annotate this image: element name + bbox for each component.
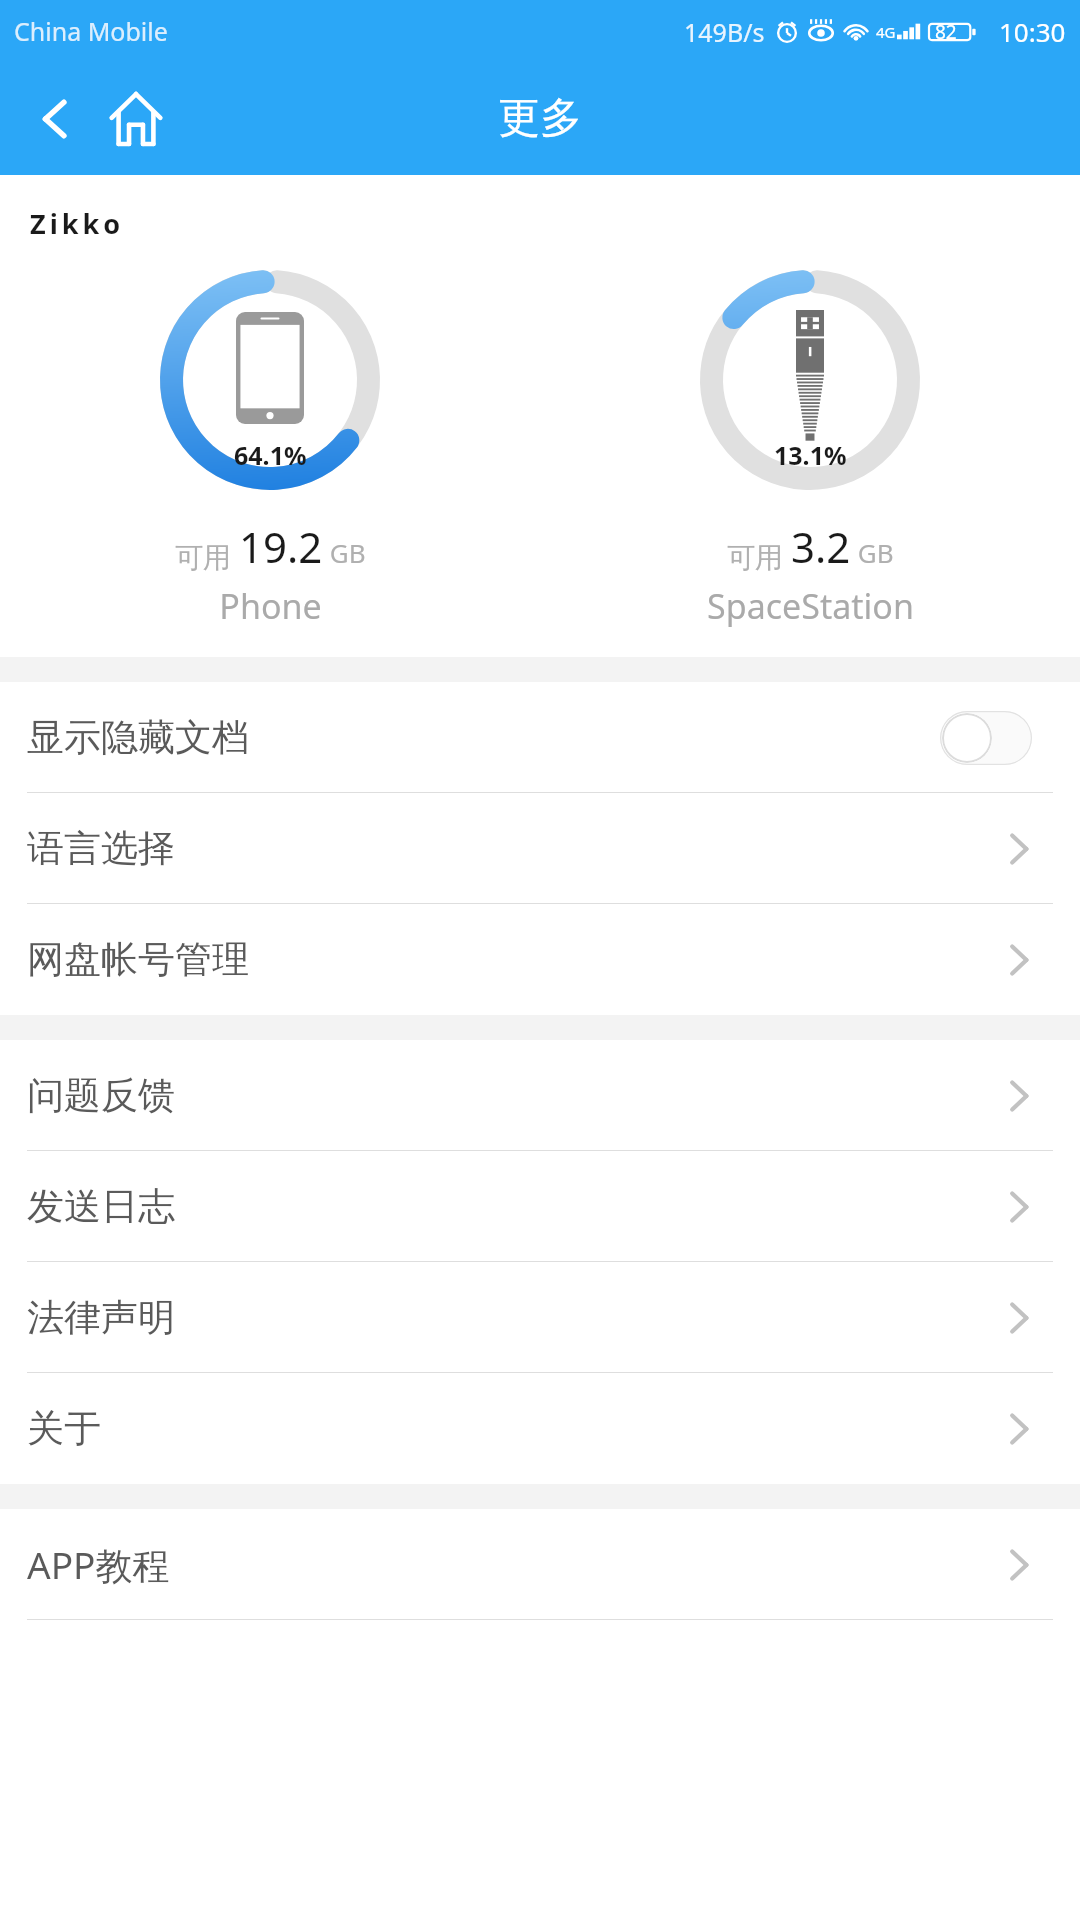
staticText: 发送日志 <box>27 1183 175 1230</box>
button[interactable]: 显示隐藏文档 <box>0 682 1080 793</box>
button[interactable]: Back <box>26 89 86 149</box>
staticText: Phone <box>219 583 322 629</box>
staticText: 关于 <box>27 1405 101 1452</box>
staticText: APP教程 <box>27 1539 170 1590</box>
button[interactable]: 语言选择 <box>0 793 1080 904</box>
staticText: 问题反馈 <box>27 1072 175 1119</box>
staticText: 4G <box>876 22 896 42</box>
staticText: 显示隐藏文档 <box>27 714 249 761</box>
staticText: 法律声明 <box>27 1294 175 1341</box>
staticText: 可用 <box>727 537 791 575</box>
staticText: Zikko <box>30 205 125 242</box>
button[interactable]: Home <box>100 83 172 155</box>
staticText: 可用 <box>175 537 239 575</box>
button[interactable]: 网盘帐号管理 <box>0 904 1080 1015</box>
staticText: 149B/s <box>684 15 765 49</box>
staticText: 3.2 <box>791 518 851 575</box>
staticText: 82 <box>935 19 957 45</box>
button[interactable]: APP教程 <box>0 1509 1080 1620</box>
button[interactable]: 问题反馈 <box>0 1040 1080 1151</box>
staticText: 语言选择 <box>27 825 175 872</box>
staticText: 19.2 <box>239 518 323 575</box>
staticText: 64.1% <box>234 438 307 472</box>
staticText: 更多 <box>498 92 582 145</box>
staticText: 10:30 <box>999 14 1066 49</box>
staticText: China Mobile <box>14 14 168 48</box>
staticText: GB <box>323 535 366 570</box>
button[interactable]: 法律声明 <box>0 1262 1080 1373</box>
staticText: 网盘帐号管理 <box>27 936 249 983</box>
staticText: 13.1% <box>774 438 847 472</box>
staticText: SpaceStation <box>707 583 914 629</box>
other: Toggle <box>940 711 1032 765</box>
button[interactable]: 发送日志 <box>0 1151 1080 1262</box>
button[interactable]: 关于 <box>0 1373 1080 1484</box>
staticText: GB <box>851 535 894 570</box>
